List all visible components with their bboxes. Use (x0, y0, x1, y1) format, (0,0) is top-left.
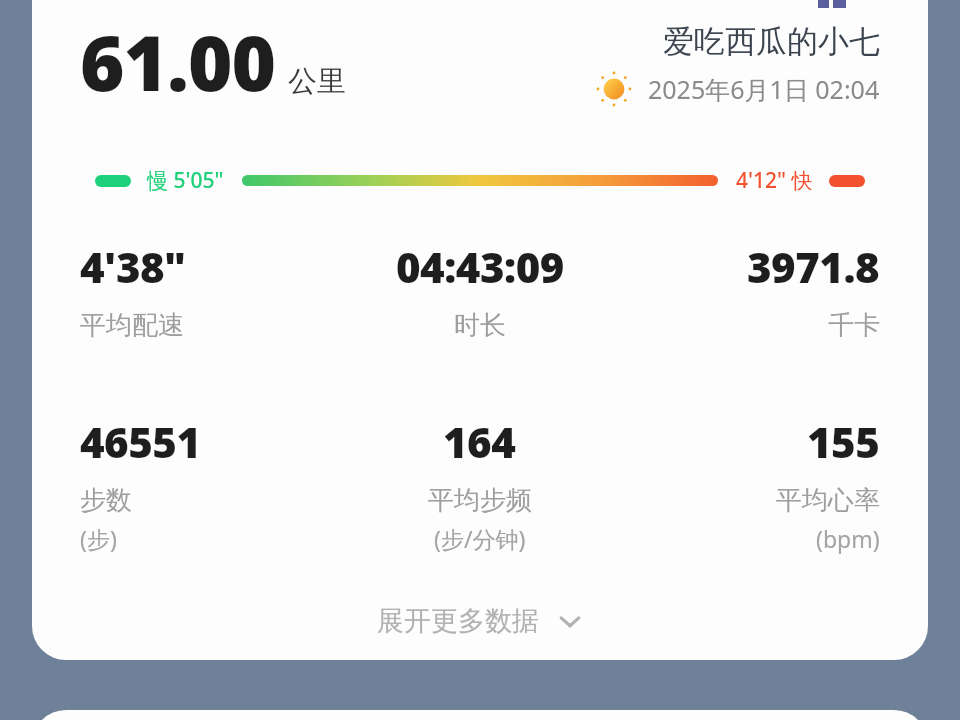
other: Expand more data (557, 608, 583, 634)
staticText: 61.00 (80, 10, 276, 114)
staticText: (步) (80, 523, 117, 554)
staticText: 展开更多数据 (377, 604, 539, 638)
staticText: 公里 (288, 63, 346, 100)
staticText: 46551 (80, 413, 201, 470)
staticText: 千卡 (828, 309, 880, 342)
staticText: 爱吃西瓜的小七 (663, 22, 880, 61)
button[interactable]: 3971.8 (613, 238, 880, 342)
staticText: (步/分钟) (434, 523, 526, 554)
staticText: 2025年6月1日 02:04 (648, 72, 880, 106)
button[interactable]: 04:43:09 (346, 238, 613, 342)
staticText: 平均步频 (428, 484, 532, 517)
button[interactable]: 展开更多数据 (32, 590, 928, 652)
staticText: 慢 5'05" (147, 166, 224, 195)
button[interactable]: 46551 (80, 413, 346, 554)
staticText: 155 (807, 413, 880, 470)
button[interactable]: 4'38" (80, 238, 346, 342)
staticText: (bpm) (816, 523, 880, 554)
button[interactable]: 155 (613, 413, 880, 554)
staticText: 164 (443, 413, 516, 470)
staticText: 04:43:09 (396, 238, 564, 295)
button[interactable]: 164 (346, 413, 613, 554)
staticText: 4'12" 快 (736, 166, 813, 195)
staticText: 步数 (80, 484, 132, 517)
staticText: 3971.8 (747, 238, 880, 295)
staticText: 平均配速 (80, 309, 184, 342)
staticText: 平均心率 (776, 484, 880, 517)
staticText: 4'38" (80, 238, 186, 295)
staticText: 时长 (454, 309, 506, 342)
